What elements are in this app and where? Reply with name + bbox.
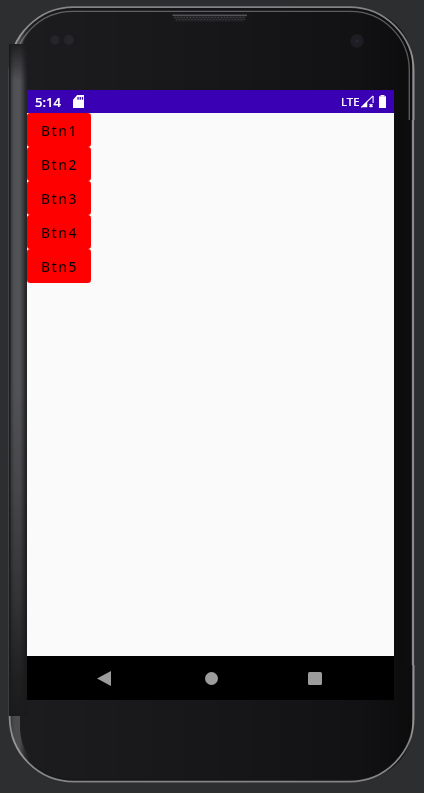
button[interactable]: Btn2 bbox=[27, 147, 91, 181]
button[interactable]: Btn3 bbox=[27, 181, 91, 215]
button[interactable]: Home bbox=[189, 656, 233, 700]
button[interactable]: Btn5 bbox=[27, 249, 91, 283]
button[interactable]: Recent apps bbox=[293, 656, 337, 700]
staticText: Btn5 bbox=[41, 257, 78, 276]
staticText: Btn3 bbox=[41, 189, 78, 208]
staticText: Btn4 bbox=[41, 223, 78, 242]
staticText: Btn2 bbox=[41, 155, 78, 174]
button[interactable]: Btn1 bbox=[27, 113, 91, 147]
staticText: Btn1 bbox=[41, 121, 78, 140]
staticText: 5:14 bbox=[35, 93, 61, 111]
staticText: LTE bbox=[341, 94, 360, 110]
button[interactable]: Btn4 bbox=[27, 215, 91, 249]
button[interactable]: Back bbox=[82, 656, 126, 700]
